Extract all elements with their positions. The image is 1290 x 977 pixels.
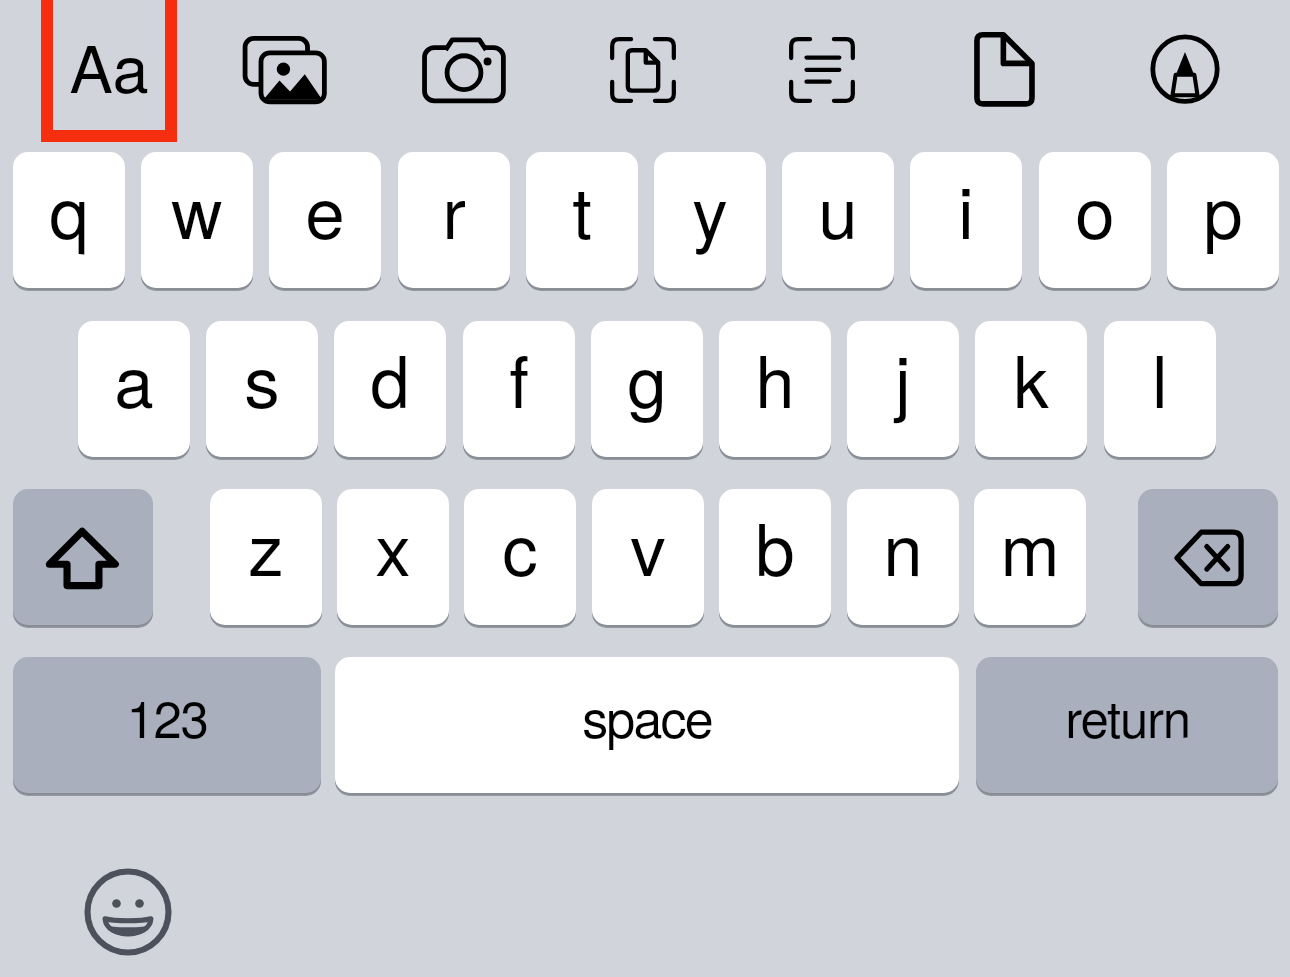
button[interactable]: 123 [13, 657, 321, 793]
button[interactable]: Shift [13, 489, 153, 625]
button[interactable]: f [463, 321, 575, 457]
staticText: space [582, 678, 712, 752]
button[interactable]: Camera [418, 24, 510, 116]
staticText: t [572, 157, 592, 259]
button[interactable]: k [975, 321, 1087, 457]
staticText: x [375, 494, 411, 596]
staticText: f [509, 326, 529, 428]
button[interactable]: Scan document [597, 24, 689, 116]
button[interactable]: a [78, 321, 190, 457]
staticText: 123 [126, 679, 208, 752]
button[interactable]: v [592, 489, 704, 625]
staticText: z [248, 494, 284, 596]
staticText: e [305, 157, 345, 259]
button[interactable]: b [719, 489, 831, 625]
button[interactable]: u [782, 152, 894, 288]
button[interactable]: space [335, 657, 959, 793]
button[interactable]: h [719, 321, 831, 457]
staticText: w [171, 157, 223, 259]
staticText: k [1013, 326, 1049, 428]
staticText: o [1075, 157, 1115, 259]
staticText: p [1203, 157, 1243, 259]
staticText: c [502, 494, 538, 596]
staticText: q [49, 157, 89, 259]
staticText: d [370, 326, 410, 428]
staticText: return [1065, 679, 1190, 752]
button[interactable]: Photos [239, 24, 331, 116]
button[interactable]: o [1039, 152, 1151, 288]
staticText: j [895, 326, 911, 428]
button[interactable]: w [141, 152, 253, 288]
button[interactable]: q [13, 152, 125, 288]
staticText: y [692, 157, 728, 259]
button[interactable]: Delete [1138, 489, 1278, 625]
button[interactable]: l [1104, 321, 1216, 457]
button[interactable]: s [206, 321, 318, 457]
button[interactable]: z [210, 489, 322, 625]
staticText: l [1152, 326, 1168, 428]
staticText: v [630, 494, 666, 596]
button[interactable]: Add file [957, 24, 1049, 116]
button[interactable]: c [464, 489, 576, 625]
staticText: s [244, 326, 280, 428]
button[interactable]: r [398, 152, 510, 288]
staticText: i [958, 157, 974, 259]
staticText: u [818, 157, 858, 259]
button[interactable]: Markup [1139, 24, 1231, 116]
button[interactable]: x [337, 489, 449, 625]
button[interactable]: Emoji keyboard [83, 867, 173, 957]
button[interactable]: return [976, 657, 1278, 793]
button[interactable]: g [591, 321, 703, 457]
button[interactable]: m [974, 489, 1086, 625]
staticText: Aa [69, 18, 149, 111]
button[interactable]: p [1167, 152, 1279, 288]
button[interactable]: d [334, 321, 446, 457]
button[interactable]: n [847, 489, 959, 625]
button[interactable]: t [526, 152, 638, 288]
button[interactable]: Scan text [776, 24, 868, 116]
button[interactable]: Text size [41, 0, 177, 142]
staticText: h [755, 326, 795, 428]
staticText: a [114, 326, 154, 428]
staticText: b [755, 494, 795, 596]
button[interactable]: i [910, 152, 1022, 288]
button[interactable]: e [269, 152, 381, 288]
button[interactable]: y [654, 152, 766, 288]
staticText: r [442, 157, 466, 259]
staticText: n [883, 494, 923, 596]
button[interactable]: j [847, 321, 959, 457]
staticText: m [1000, 494, 1060, 596]
staticText: g [627, 326, 667, 428]
